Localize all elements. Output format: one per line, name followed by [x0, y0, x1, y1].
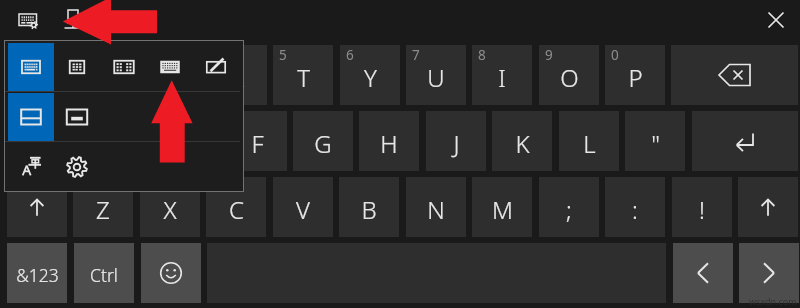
staticText: U	[427, 61, 445, 94]
staticText: X	[163, 193, 177, 226]
button[interactable]: !	[672, 177, 732, 237]
staticText: wsxdn.com	[749, 295, 797, 307]
button[interactable]: B	[339, 177, 399, 237]
button[interactable]: Q	[7, 45, 67, 105]
button[interactable]: Y	[340, 45, 400, 105]
staticText: T	[297, 61, 310, 94]
button[interactable]: Dock keyboard	[60, 8, 86, 32]
button[interactable]: Docked	[8, 93, 54, 141]
staticText: A	[50, 127, 65, 160]
button[interactable]: ;	[539, 177, 599, 237]
staticText: K	[515, 127, 530, 160]
button[interactable]: Keyboard settings	[19, 14, 39, 30]
button[interactable]: N	[406, 177, 466, 237]
button[interactable]: Backspace	[671, 45, 798, 105]
button[interactable]: "	[625, 111, 685, 171]
staticText: 8	[478, 46, 486, 64]
staticText: I	[498, 61, 506, 94]
staticText: H	[380, 127, 398, 160]
button[interactable]: M	[472, 177, 532, 237]
button[interactable]: Close	[763, 7, 789, 33]
staticText: Y	[364, 61, 377, 94]
button[interactable]: W	[74, 45, 134, 105]
staticText: J	[453, 127, 460, 160]
staticText: ;	[566, 193, 572, 226]
staticText: E	[163, 61, 177, 94]
button[interactable]: &123	[7, 243, 67, 303]
button[interactable]: Change language	[8, 143, 54, 191]
button[interactable]: Previous	[673, 243, 733, 303]
staticText: D	[181, 127, 199, 160]
button[interactable]: Ctrl	[74, 243, 134, 303]
button[interactable]: Settings	[54, 143, 100, 191]
staticText: F	[251, 127, 264, 160]
staticText: :	[632, 193, 638, 226]
button[interactable]: V	[273, 177, 333, 237]
staticText: O	[560, 61, 579, 94]
staticText: 5	[279, 46, 287, 64]
button[interactable]: Shift	[738, 177, 798, 237]
button[interactable]: Emoji	[141, 243, 201, 303]
staticText: S	[117, 127, 131, 160]
button[interactable]: K	[492, 111, 552, 171]
button[interactable]: S	[94, 111, 154, 171]
button[interactable]: E	[140, 45, 200, 105]
staticText: W	[93, 61, 115, 94]
button[interactable]: R	[207, 45, 267, 105]
button[interactable]: Small keyboard	[54, 43, 100, 91]
staticText: N	[427, 193, 445, 226]
button[interactable]: G	[293, 111, 353, 171]
staticText: R	[230, 61, 245, 94]
button[interactable]: :	[605, 177, 665, 237]
button[interactable]: A	[27, 111, 87, 171]
button[interactable]: Z	[73, 177, 133, 237]
staticText: V	[296, 193, 310, 226]
button[interactable]: Floating	[54, 93, 100, 141]
staticText: "	[651, 127, 660, 160]
button[interactable]: X	[140, 177, 200, 237]
staticText: 6	[346, 46, 354, 64]
button[interactable]: U	[406, 45, 466, 105]
button[interactable]: Enter	[692, 111, 798, 171]
staticText: 0	[611, 46, 619, 64]
button[interactable]: I	[472, 45, 532, 105]
staticText: M	[492, 193, 513, 226]
button[interactable]: J	[426, 111, 486, 171]
button[interactable]: Standard keyboard	[147, 43, 193, 91]
button[interactable]: Split keyboard	[101, 43, 147, 91]
button[interactable]: F	[227, 111, 287, 171]
staticText: P	[628, 61, 643, 94]
button[interactable]: C	[206, 177, 266, 237]
staticText: Q	[28, 61, 47, 94]
staticText: 2	[80, 46, 88, 64]
button[interactable]: Handwriting	[193, 43, 239, 91]
button[interactable]: O	[539, 45, 599, 105]
staticText: B	[361, 193, 377, 226]
staticText: 7	[412, 46, 420, 64]
staticText: 9	[545, 46, 553, 64]
staticText: G	[314, 127, 332, 160]
staticText: &123	[16, 263, 59, 287]
staticText: Ctrl	[90, 263, 118, 287]
staticText: L	[583, 127, 596, 160]
staticText: !	[699, 193, 705, 226]
staticText: 4	[213, 46, 221, 64]
staticText: C	[229, 193, 244, 226]
button[interactable]: D	[160, 111, 220, 171]
button[interactable]: H	[359, 111, 419, 171]
staticText: Z	[96, 193, 110, 226]
button[interactable]: Default keyboard	[8, 43, 54, 91]
button[interactable]: P	[605, 45, 665, 105]
button[interactable]: T	[273, 45, 333, 105]
button[interactable]: L	[559, 111, 619, 171]
button[interactable]: Shift	[7, 177, 67, 237]
button[interactable]: Next	[739, 243, 799, 303]
